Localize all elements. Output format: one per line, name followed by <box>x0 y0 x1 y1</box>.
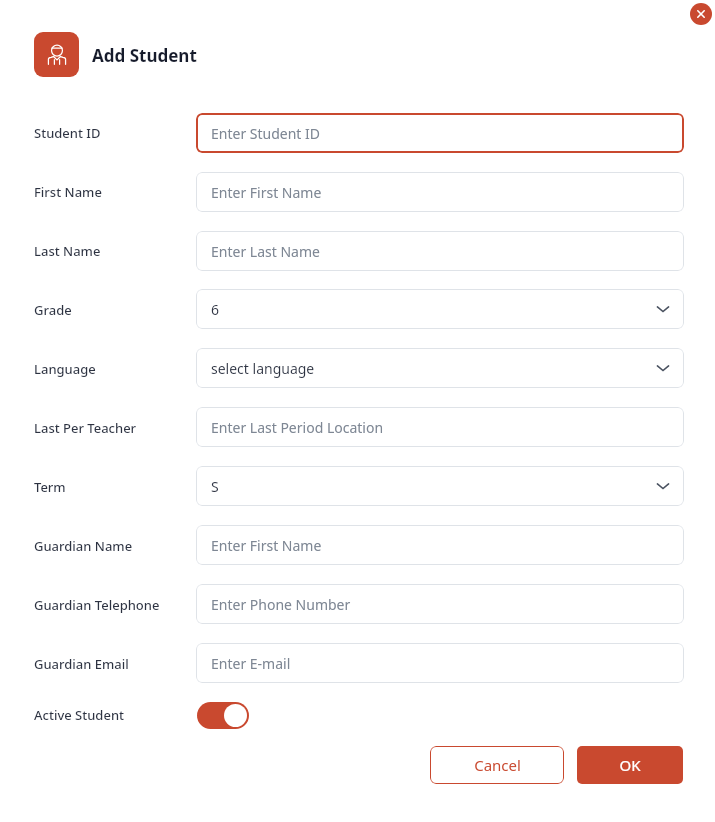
staticText: Language <box>34 360 96 378</box>
button[interactable]: Enter Last Period Location <box>196 407 684 447</box>
staticText: Term <box>34 478 66 496</box>
button[interactable]: select language <box>196 348 684 388</box>
button[interactable]: OK <box>577 746 683 784</box>
staticText: Active Student <box>34 706 125 724</box>
staticText: OK <box>619 755 641 775</box>
staticText: Guardian Email <box>34 655 129 673</box>
staticText: Enter Phone Number <box>211 595 351 614</box>
button[interactable]: Enter First Name <box>196 525 684 565</box>
staticText: Guardian Name <box>34 537 133 555</box>
staticText: Last Per Teacher <box>34 419 137 437</box>
button[interactable]: Close <box>690 3 712 25</box>
button[interactable]: Enter E-mail <box>196 643 684 683</box>
staticText: Enter Student ID <box>211 124 321 143</box>
button[interactable]: Enter Student ID <box>196 113 684 153</box>
staticText: Cancel <box>474 755 521 775</box>
staticText: select language <box>211 359 315 378</box>
staticText: Student ID <box>34 124 101 142</box>
staticText: Enter Last Period Location <box>211 418 384 437</box>
staticText: Enter First Name <box>211 183 322 202</box>
staticText: Last Name <box>34 242 101 260</box>
staticText: Guardian Telephone <box>34 596 160 614</box>
button[interactable]: Cancel <box>430 746 564 784</box>
staticText: Enter Last Name <box>211 242 320 261</box>
staticText: First Name <box>34 183 102 201</box>
button[interactable]: S <box>196 466 684 506</box>
staticText: 6 <box>211 300 220 319</box>
button[interactable]: 6 <box>196 289 684 329</box>
button[interactable]: Enter Phone Number <box>196 584 684 624</box>
staticText: Grade <box>34 301 72 319</box>
staticText: S <box>211 477 219 496</box>
staticText: Enter E-mail <box>211 654 291 673</box>
button[interactable]: Active Student toggle <box>197 702 249 729</box>
staticText: Add Student <box>92 44 197 67</box>
button[interactable]: Enter Last Name <box>196 231 684 271</box>
button[interactable]: Student <box>34 32 79 77</box>
staticText: Enter First Name <box>211 536 322 555</box>
button[interactable]: Enter First Name <box>196 172 684 212</box>
